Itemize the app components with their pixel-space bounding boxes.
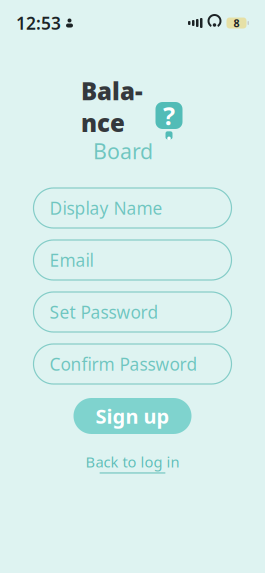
button[interactable]: Email bbox=[33, 240, 231, 280]
button[interactable]: Sign up bbox=[73, 398, 191, 434]
staticText: Balance bbox=[81, 75, 143, 139]
button[interactable]: Set Password bbox=[33, 292, 231, 332]
staticText: Board bbox=[93, 137, 153, 165]
staticText: Display Name bbox=[49, 196, 162, 219]
staticText: 12:53 bbox=[16, 11, 61, 34]
button[interactable]: Display Name bbox=[33, 188, 231, 228]
staticText: ? bbox=[163, 99, 175, 132]
staticText: Confirm Password bbox=[49, 352, 197, 375]
staticText: Set Password bbox=[49, 300, 158, 323]
staticText: Back to log in bbox=[85, 452, 179, 471]
button[interactable]: Back to log in bbox=[85, 452, 179, 473]
staticText: Sign up bbox=[95, 403, 169, 429]
staticText: 8 bbox=[233, 16, 239, 30]
staticText: Email bbox=[49, 248, 93, 271]
button[interactable]: Confirm Password bbox=[33, 344, 231, 384]
